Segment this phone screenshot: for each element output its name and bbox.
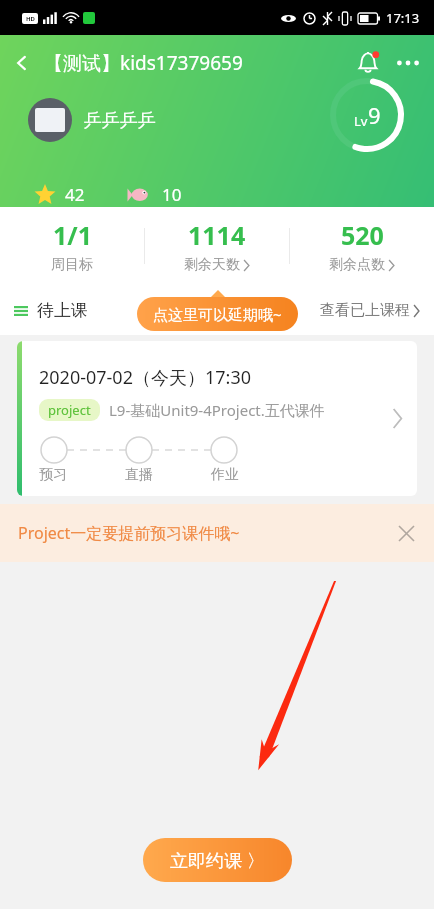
staticText: 【测试】kids17379659 xyxy=(44,50,243,76)
staticText: Lv xyxy=(354,112,368,130)
staticText: 剩余天数 xyxy=(184,256,240,274)
button[interactable]: 点这里可以延期哦~ xyxy=(137,297,298,331)
button[interactable]: 查看已上课程 xyxy=(320,301,420,320)
staticText: 作业 xyxy=(211,466,239,484)
staticText: 待上课 xyxy=(37,300,88,321)
staticText: 剩余点数 xyxy=(329,256,385,274)
button[interactable]: More options xyxy=(390,41,426,85)
staticText: 42 xyxy=(65,183,85,206)
staticText: L9-基础Unit9-4Project.五代课件 xyxy=(109,400,325,420)
button[interactable]: Lv xyxy=(330,78,404,152)
button[interactable]: 1114 xyxy=(145,207,289,285)
staticText: 520 xyxy=(341,218,384,252)
staticText: 乒乒乒乒 xyxy=(84,109,156,132)
staticText: 周目标 xyxy=(51,256,93,274)
button[interactable]: Avatar xyxy=(28,98,72,142)
button[interactable]: Back xyxy=(0,41,44,85)
button[interactable]: 1/1 xyxy=(0,207,144,285)
staticText: 2020-07-02（今天）17:30 xyxy=(39,365,251,390)
staticText: 10 xyxy=(162,183,182,206)
staticText: 1/1 xyxy=(53,218,92,252)
staticText: 17:13 xyxy=(386,9,420,27)
staticText: 立即约课 〉 xyxy=(170,848,265,873)
button[interactable]: Close xyxy=(392,519,420,547)
staticText: 点这里可以延期哦~ xyxy=(153,304,282,324)
staticText: Project一定要提前预习课件哦~ xyxy=(18,522,240,544)
staticText: 直播 xyxy=(125,466,153,484)
staticText: 预习 xyxy=(39,466,67,484)
button[interactable]: 520 xyxy=(290,207,434,285)
button[interactable]: 2020-07-02（今天）17:30 xyxy=(17,341,417,496)
staticText: 9 xyxy=(368,100,381,130)
staticText: 1114 xyxy=(188,218,246,252)
staticText: HD xyxy=(26,15,35,23)
staticText: 查看已上课程 xyxy=(320,301,410,320)
button[interactable]: Notifications xyxy=(346,41,390,85)
staticText: project xyxy=(48,401,91,419)
button[interactable]: 待上课 xyxy=(14,300,88,321)
button[interactable]: 立即约课 〉 xyxy=(143,838,292,882)
